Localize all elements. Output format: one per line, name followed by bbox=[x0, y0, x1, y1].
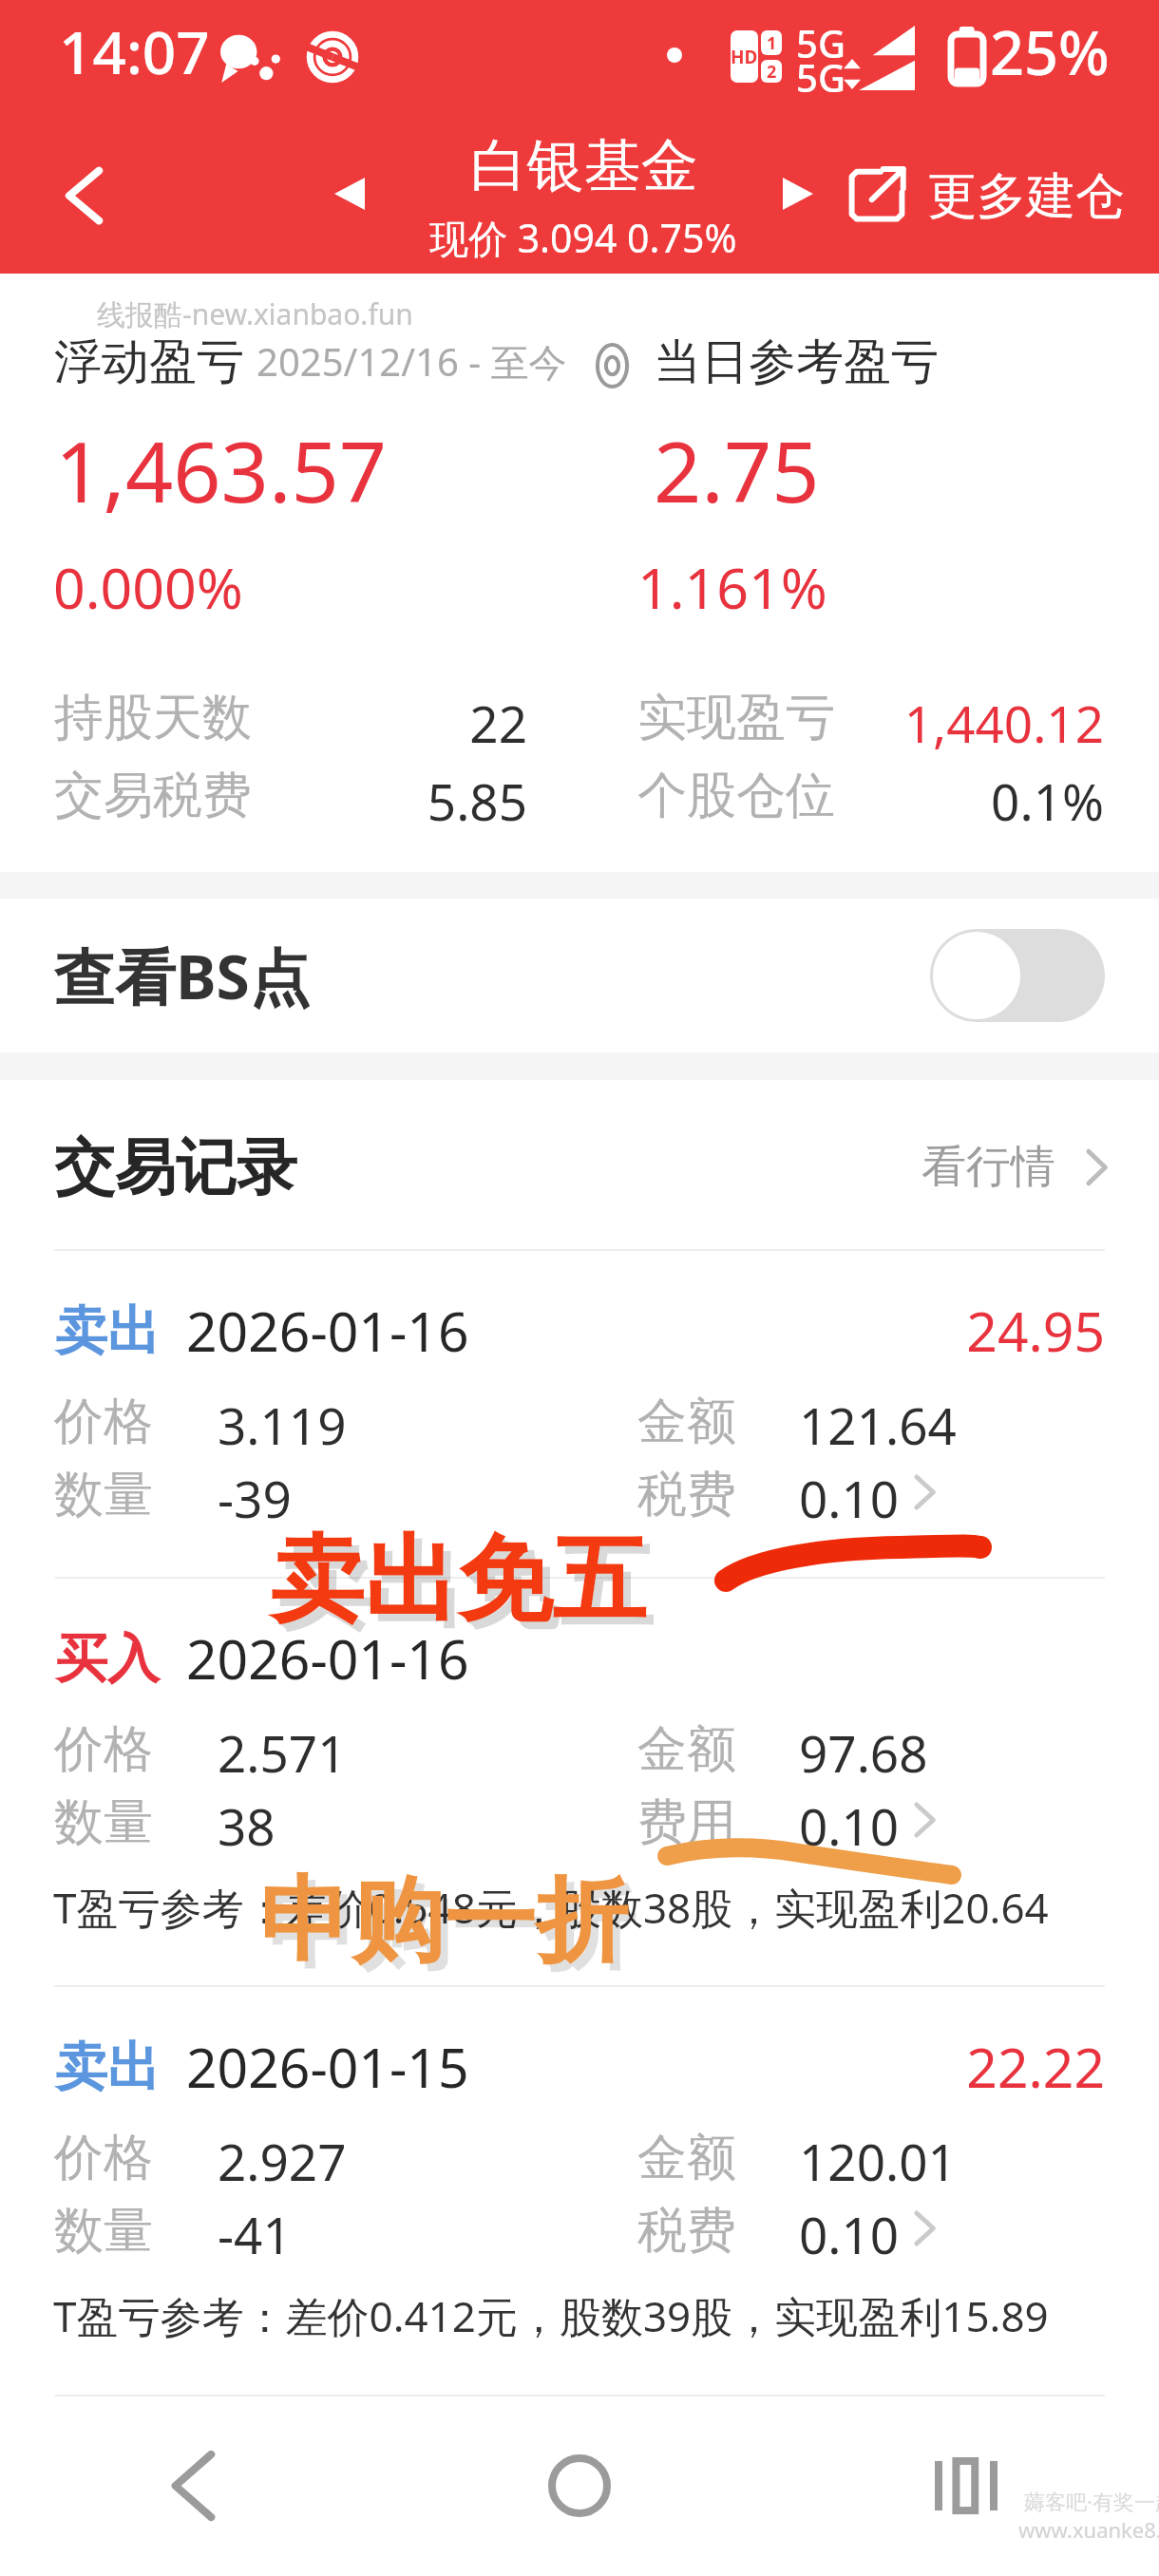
staticText: 薅客吧·有奖一起赚！ bbox=[1024, 2487, 1159, 2515]
staticText: 0.000% bbox=[53, 549, 243, 625]
staticText: 数量 bbox=[54, 1791, 153, 1854]
staticText: 个股仓位 bbox=[637, 765, 835, 827]
staticText: 14:07 bbox=[59, 11, 210, 91]
staticText: T盈亏参考：差价0.548元，股数38股，实现盈利20.64 bbox=[53, 1879, 1049, 1936]
staticText: 0.1% bbox=[855, 767, 1104, 835]
staticText: 卖出 bbox=[55, 2035, 160, 2100]
staticText: 0.10 bbox=[799, 2200, 900, 2268]
staticText: 2025/12/16 - 至今 bbox=[256, 335, 567, 388]
button[interactable]: Back bbox=[0, 2396, 386, 2576]
staticText: 2.927 bbox=[218, 2127, 347, 2195]
staticText: www.xuanke8.com bbox=[1018, 2515, 1159, 2544]
staticText: 价格 bbox=[54, 1391, 153, 1453]
staticText: 交易税费 bbox=[54, 765, 252, 827]
staticText: 2026-01-15 bbox=[186, 2030, 469, 2104]
staticText: -39 bbox=[218, 1464, 292, 1532]
staticText: 2 bbox=[767, 60, 777, 83]
staticText: 卖出免五 bbox=[277, 1529, 654, 1648]
staticText: 5G bbox=[796, 17, 845, 68]
staticText: 看行情 bbox=[921, 1139, 1055, 1195]
staticText: HD bbox=[731, 45, 758, 69]
staticText: 5G bbox=[796, 51, 845, 103]
staticText: 更多建仓 bbox=[927, 165, 1125, 228]
staticText: 费用 bbox=[637, 1791, 736, 1854]
staticText: 查看BS点 bbox=[54, 935, 311, 1017]
button[interactable]: Home bbox=[386, 2396, 772, 2576]
staticText: 120.01 bbox=[799, 2127, 957, 2195]
staticText: T盈亏参考：差价0.412元，股数39股，实现盈利15.89 bbox=[53, 2287, 1049, 2344]
staticText: -41 bbox=[218, 2200, 292, 2268]
staticText: 5.85 bbox=[285, 767, 527, 835]
staticText: 22 bbox=[285, 689, 527, 757]
staticText: 线报酷-new.xianbao.fun bbox=[97, 294, 413, 333]
button[interactable]: 查看BS点 bbox=[0, 899, 1159, 1052]
staticText: 38 bbox=[218, 1791, 275, 1860]
staticText: 税费 bbox=[637, 2200, 736, 2263]
staticText: 现价 3.094 0.75% bbox=[429, 211, 737, 264]
staticText: 申购一折 bbox=[259, 1864, 628, 1979]
button[interactable]: Previous stock bbox=[293, 152, 407, 236]
staticText: 24.95 bbox=[0, 1294, 1105, 1368]
staticText: 2026-01-16 bbox=[186, 1621, 469, 1695]
staticText: 浮动盈亏 bbox=[54, 332, 244, 392]
staticText: 0.10 bbox=[799, 1464, 900, 1532]
staticText: 2026-01-16 bbox=[186, 1294, 469, 1368]
button[interactable]: 卖出 bbox=[0, 1249, 1159, 1577]
staticText: 金额 bbox=[637, 1391, 736, 1453]
button[interactable]: 卖出 bbox=[0, 1985, 1159, 2395]
staticText: 金额 bbox=[637, 2127, 736, 2189]
button[interactable]: Next stock bbox=[750, 152, 845, 236]
button[interactable]: 看行情 bbox=[902, 1118, 1128, 1216]
staticText: 2.571 bbox=[218, 1718, 347, 1787]
staticText: 价格 bbox=[54, 1718, 153, 1781]
staticText: 121.64 bbox=[799, 1391, 957, 1459]
staticText: 1 bbox=[767, 31, 777, 55]
staticText: 1,463.57 bbox=[55, 413, 388, 527]
staticText: 白银基金 bbox=[470, 130, 698, 202]
button[interactable]: 更多建仓 bbox=[836, 142, 1151, 247]
button[interactable]: Recent apps bbox=[772, 2396, 1159, 2576]
staticText: 实现盈亏 bbox=[637, 687, 835, 749]
staticText: 22.22 bbox=[0, 2030, 1105, 2104]
staticText: 卖出 bbox=[55, 1298, 160, 1364]
button[interactable]: 买入 bbox=[0, 1577, 1159, 1985]
staticText: 1.161% bbox=[637, 549, 827, 625]
staticText: 1,440.12 bbox=[855, 689, 1104, 757]
staticText: 交易记录 bbox=[54, 1129, 297, 1206]
staticText: 持股天数 bbox=[54, 687, 252, 749]
staticText: 2.75 bbox=[654, 413, 820, 527]
staticText: 申购一折 bbox=[267, 1871, 636, 1987]
staticText: 3.119 bbox=[218, 1391, 347, 1459]
staticText: 卖出免五 bbox=[270, 1522, 646, 1640]
staticText: 数量 bbox=[54, 1464, 153, 1526]
staticText: 25% bbox=[990, 11, 1110, 93]
staticText: 税费 bbox=[637, 1464, 736, 1526]
staticText: 价格 bbox=[54, 2127, 153, 2189]
staticText: 0.10 bbox=[799, 1791, 900, 1860]
staticText: 金额 bbox=[637, 1718, 736, 1781]
staticText: 当日参考盈亏 bbox=[654, 332, 939, 392]
staticText: 数量 bbox=[54, 2200, 153, 2263]
staticText: 买入 bbox=[55, 1626, 160, 1692]
staticText: 97.68 bbox=[799, 1718, 928, 1787]
button[interactable]: Back bbox=[19, 141, 147, 250]
